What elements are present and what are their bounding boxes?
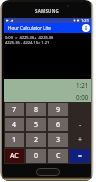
staticText: 2 <box>34 135 39 145</box>
button[interactable]: 7 <box>5 103 24 116</box>
button[interactable]: 5 <box>26 118 46 131</box>
button[interactable]: 8 <box>26 103 46 116</box>
button[interactable]: 6 <box>48 118 68 131</box>
staticText: AC <box>10 151 19 161</box>
staticText: C <box>56 151 61 161</box>
staticText: - <box>79 120 82 130</box>
staticText: Hour Calculator Lite <box>8 25 51 31</box>
button[interactable]: Home <box>36 168 60 176</box>
button[interactable]: 0 <box>26 149 46 163</box>
staticText: 1:21 <box>81 18 89 23</box>
button[interactable]: AC <box>5 149 24 163</box>
button[interactable]: 4 <box>5 118 24 131</box>
staticText: 0:00 = 4225.36+ 4225.36 <box>5 35 54 40</box>
button[interactable]: 3 <box>48 133 68 147</box>
staticText: 5 <box>34 120 39 130</box>
button[interactable]: C <box>48 149 68 163</box>
staticText: 1 <box>12 135 17 145</box>
button[interactable]: - <box>70 118 90 131</box>
button[interactable]: = <box>70 149 90 163</box>
staticText: 6 <box>56 120 61 130</box>
button[interactable]: 9 <box>48 103 68 116</box>
staticText: 0:00 <box>76 93 89 101</box>
staticText: = <box>78 151 83 161</box>
button[interactable]: 1 <box>5 133 24 147</box>
button[interactable]: 2 <box>26 133 46 147</box>
staticText: 7 <box>12 105 17 115</box>
staticText: 1:21 <box>76 81 89 89</box>
staticText: SAMSUNG <box>35 8 60 14</box>
staticText: 4225.36 - 4224.15= 1.21 <box>5 40 50 45</box>
button[interactable]: Info <box>82 24 90 32</box>
staticText: 8 <box>34 105 39 115</box>
staticText: 0 <box>34 151 39 161</box>
staticText: 3 <box>56 135 61 145</box>
staticText: 9 <box>56 105 61 115</box>
button[interactable]: + <box>70 133 90 147</box>
staticText: 4 <box>12 120 17 130</box>
staticText: + <box>78 135 83 145</box>
